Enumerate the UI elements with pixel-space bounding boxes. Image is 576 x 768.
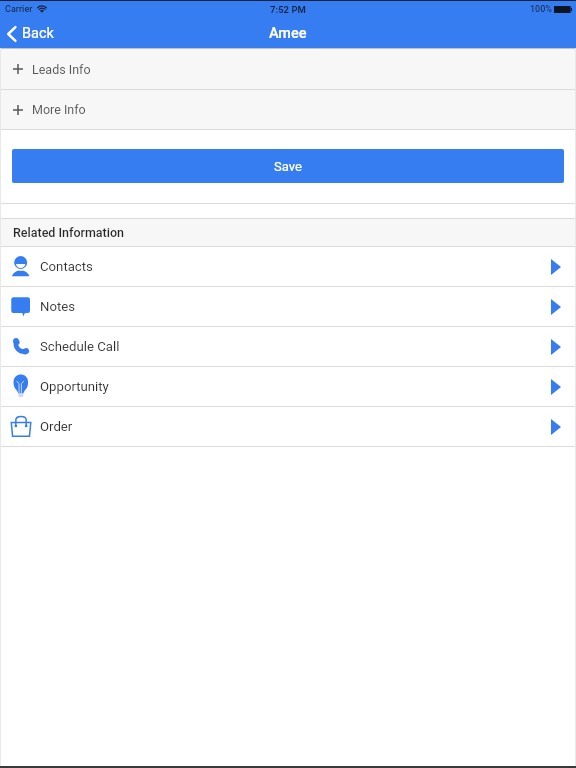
- staticText: 7:52 PM: [270, 4, 306, 15]
- staticText: Notes: [40, 299, 76, 314]
- other: Open Notes: [544, 295, 568, 319]
- staticText: Leads Info: [32, 62, 91, 77]
- staticText: Save: [274, 159, 302, 174]
- button[interactable]: More Info: [0, 90, 576, 129]
- staticText: Carrier: [5, 4, 33, 15]
- staticText: 100%: [530, 4, 552, 15]
- button[interactable]: Contacts: [0, 247, 576, 286]
- staticText: Amee: [269, 25, 307, 42]
- other: Open Order: [544, 415, 568, 439]
- other: Open Schedule Call: [544, 335, 568, 359]
- staticText: Opportunity: [40, 379, 109, 394]
- staticText: Schedule Call: [40, 339, 120, 354]
- button[interactable]: Save: [12, 149, 564, 183]
- other: Back: [6, 26, 17, 42]
- other: Open Contacts: [544, 255, 568, 279]
- button[interactable]: Order: [0, 407, 576, 446]
- button[interactable]: Notes: [0, 287, 576, 326]
- button[interactable]: Opportunity: [0, 367, 576, 406]
- other: Open Opportunity: [544, 375, 568, 399]
- button[interactable]: Back: [0, 22, 60, 45]
- staticText: Related Information: [13, 225, 125, 240]
- staticText: Contacts: [40, 259, 93, 274]
- button[interactable]: Schedule Call: [0, 327, 576, 366]
- staticText: Order: [40, 419, 73, 434]
- button[interactable]: Leads Info: [0, 49, 576, 89]
- staticText: More Info: [32, 102, 86, 117]
- staticText: Back: [22, 25, 54, 42]
